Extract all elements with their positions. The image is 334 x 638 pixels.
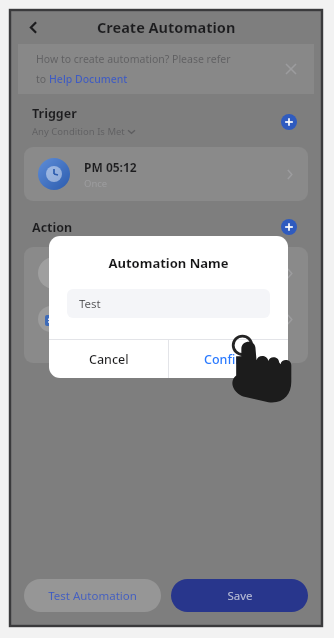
button[interactable]: Confirm [169, 340, 288, 378]
button[interactable]: Add action [278, 216, 300, 238]
staticText: Action [32, 219, 278, 236]
button[interactable]: Test [67, 289, 270, 318]
button[interactable]: Back [18, 12, 48, 42]
staticText: PM 05:12 [84, 159, 137, 175]
staticText: Test Automation [48, 588, 137, 604]
button[interactable]: Any Condition Is Met [32, 125, 135, 138]
button[interactable]: Add trigger [278, 111, 300, 133]
staticText: Any Condition Is Met [32, 125, 125, 138]
staticText: Cancel [89, 351, 129, 368]
button[interactable]: Save [171, 579, 308, 612]
button[interactable]: Cancel [49, 340, 168, 378]
button[interactable]: Effective Time [24, 299, 308, 339]
button[interactable]: Device [24, 247, 308, 299]
staticText: Trigger [32, 105, 77, 122]
staticText: Effective Time [78, 311, 240, 327]
button[interactable]: Test Automation [24, 579, 161, 612]
staticText: Automation Name [49, 254, 288, 272]
staticText: How to create automation? Please refer [36, 52, 231, 66]
button[interactable]: Help Document [49, 72, 128, 86]
staticText: Device [84, 265, 285, 281]
staticText: All Time [240, 312, 278, 326]
button[interactable]: Close [278, 56, 304, 82]
staticText: Test [79, 296, 101, 312]
staticText: Confirm [204, 351, 253, 368]
staticText: Once [84, 177, 108, 190]
button[interactable]: PM 05:12 [24, 147, 308, 201]
staticText: Save [227, 588, 253, 604]
staticText: to [36, 72, 49, 86]
staticText: Create Automation [97, 17, 236, 37]
